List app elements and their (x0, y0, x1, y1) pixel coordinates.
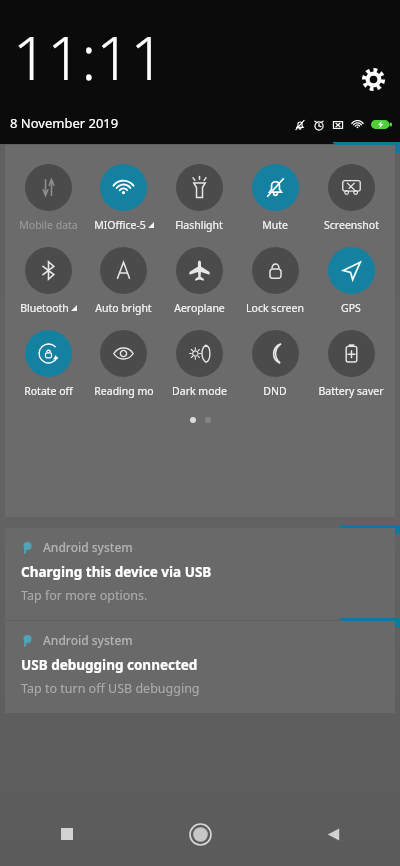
button[interactable]: Recents (0, 802, 134, 866)
button[interactable]: Home (134, 802, 267, 866)
staticText: Dark mode (172, 384, 227, 398)
staticText: 11:11 (13, 16, 165, 98)
staticText: MIOffice-5 (94, 218, 146, 232)
button[interactable]: Screenshot (313, 164, 389, 232)
button[interactable]: Rotate off (11, 330, 86, 398)
staticText: Android system (43, 539, 133, 555)
staticText: DND (263, 384, 287, 398)
button[interactable]: DND (237, 330, 313, 398)
staticText: Mute (262, 218, 288, 232)
button[interactable]: Reading mo (86, 330, 161, 398)
button[interactable]: Battery saver (313, 330, 389, 398)
button[interactable]: Bluetooth (11, 247, 86, 315)
button[interactable]: Settings (354, 60, 392, 98)
button[interactable]: Back (267, 802, 400, 866)
staticText: Bluetooth (20, 301, 69, 315)
button[interactable]: MIOffice-5 (86, 164, 161, 232)
staticText: Flashlight (175, 218, 223, 232)
staticText: Charging this device via USB (21, 563, 212, 581)
button[interactable]: Aeroplane (161, 247, 237, 315)
staticText: Screenshot (324, 218, 379, 232)
staticText: Tap to turn off USB debugging (21, 680, 200, 697)
staticText: GPS (341, 301, 361, 315)
staticText: Mobile data (19, 218, 78, 232)
button[interactable]: Lock screen (237, 247, 313, 315)
staticText: USB debugging connected (21, 656, 198, 674)
button[interactable]: Android system (5, 621, 395, 713)
staticText: Aeroplane (174, 301, 225, 315)
button[interactable]: Android system (5, 528, 395, 620)
staticText: Lock screen (246, 301, 304, 315)
staticText: Tap for more options. (21, 587, 148, 604)
staticText: 8 November 2019 (10, 114, 119, 132)
button[interactable]: Dark mode (161, 330, 237, 398)
staticText: Android system (43, 632, 133, 648)
staticText: Auto bright (95, 301, 152, 315)
staticText: Reading mo (94, 384, 154, 398)
button[interactable]: Flashlight (161, 164, 237, 232)
button[interactable]: GPS (313, 247, 389, 315)
staticText: Battery saver (318, 384, 384, 398)
staticText: Rotate off (24, 384, 73, 398)
button[interactable]: Auto bright (86, 247, 161, 315)
button[interactable]: Mobile data (11, 164, 86, 232)
button[interactable]: Mute (237, 164, 313, 232)
